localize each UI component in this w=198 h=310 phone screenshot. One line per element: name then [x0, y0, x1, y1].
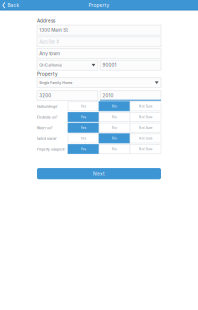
- staticText: Not Sure: [138, 147, 152, 151]
- staticText: Any town: [39, 51, 60, 56]
- button[interactable]: Not Sure: [130, 134, 161, 143]
- staticText: Single Family Home: [39, 81, 72, 85]
- staticText: Water on?: [37, 125, 52, 130]
- staticText: Outbuildings?: [37, 104, 57, 109]
- button[interactable]: Yes: [68, 144, 99, 154]
- button[interactable]: Yes: [68, 134, 99, 143]
- staticText: Property: [37, 71, 58, 77]
- staticText: Yes: [80, 126, 86, 130]
- button[interactable]: Not Sure: [130, 144, 161, 154]
- button[interactable]: 90001: [100, 60, 161, 70]
- staticText: 90001: [102, 62, 116, 68]
- staticText: No: [112, 104, 117, 108]
- button[interactable]: Single Family Home: [37, 78, 161, 88]
- button[interactable]: Yes: [68, 123, 99, 132]
- staticText: Property occupied?: [37, 146, 65, 152]
- staticText: Yes: [80, 115, 86, 119]
- button[interactable]: 3200: [37, 91, 98, 101]
- staticText: No: [112, 115, 117, 119]
- staticText: No: [112, 136, 117, 140]
- button[interactable]: Next: [37, 168, 161, 179]
- staticText: Next: [93, 171, 105, 177]
- staticText: 2010: [102, 93, 113, 98]
- staticText: 3200: [39, 93, 51, 98]
- staticText: CA (California): [39, 63, 62, 67]
- staticText: Address: [37, 18, 55, 23]
- staticText: Back: [7, 2, 19, 8]
- button[interactable]: Not Sure: [130, 123, 161, 132]
- staticText: Not Sure: [138, 104, 152, 108]
- button[interactable]: 2010: [100, 91, 161, 101]
- staticText: 1300 Main St.: [39, 27, 68, 33]
- staticText: Electricity on?: [37, 114, 57, 120]
- staticText: No: [112, 147, 117, 151]
- button[interactable]: No: [99, 144, 130, 154]
- button[interactable]: Back: [0, 0, 23, 11]
- staticText: Not Sure: [138, 136, 152, 140]
- button[interactable]: No: [99, 102, 130, 111]
- button[interactable]: Apt/Ste #: [37, 37, 161, 47]
- button[interactable]: Not Sure: [130, 112, 161, 122]
- staticText: Gated access?: [37, 136, 56, 141]
- button[interactable]: Any town: [37, 48, 161, 58]
- button[interactable]: No: [99, 112, 130, 122]
- staticText: Apt/Ste #: [39, 39, 59, 44]
- staticText: Yes: [80, 136, 86, 140]
- staticText: No: [112, 126, 117, 130]
- staticText: Yes: [80, 147, 86, 151]
- button[interactable]: No: [99, 134, 130, 143]
- button[interactable]: Yes: [68, 112, 99, 122]
- staticText: Property: [88, 2, 109, 8]
- button[interactable]: CA (California): [37, 60, 98, 70]
- staticText: Not Sure: [138, 126, 152, 130]
- staticText: Yes: [80, 104, 86, 108]
- button[interactable]: No: [99, 123, 130, 132]
- staticText: Not Sure: [138, 115, 152, 119]
- button[interactable]: 1300 Main St.: [37, 25, 161, 35]
- button[interactable]: Yes: [68, 102, 99, 111]
- button[interactable]: Not Sure: [130, 102, 161, 111]
